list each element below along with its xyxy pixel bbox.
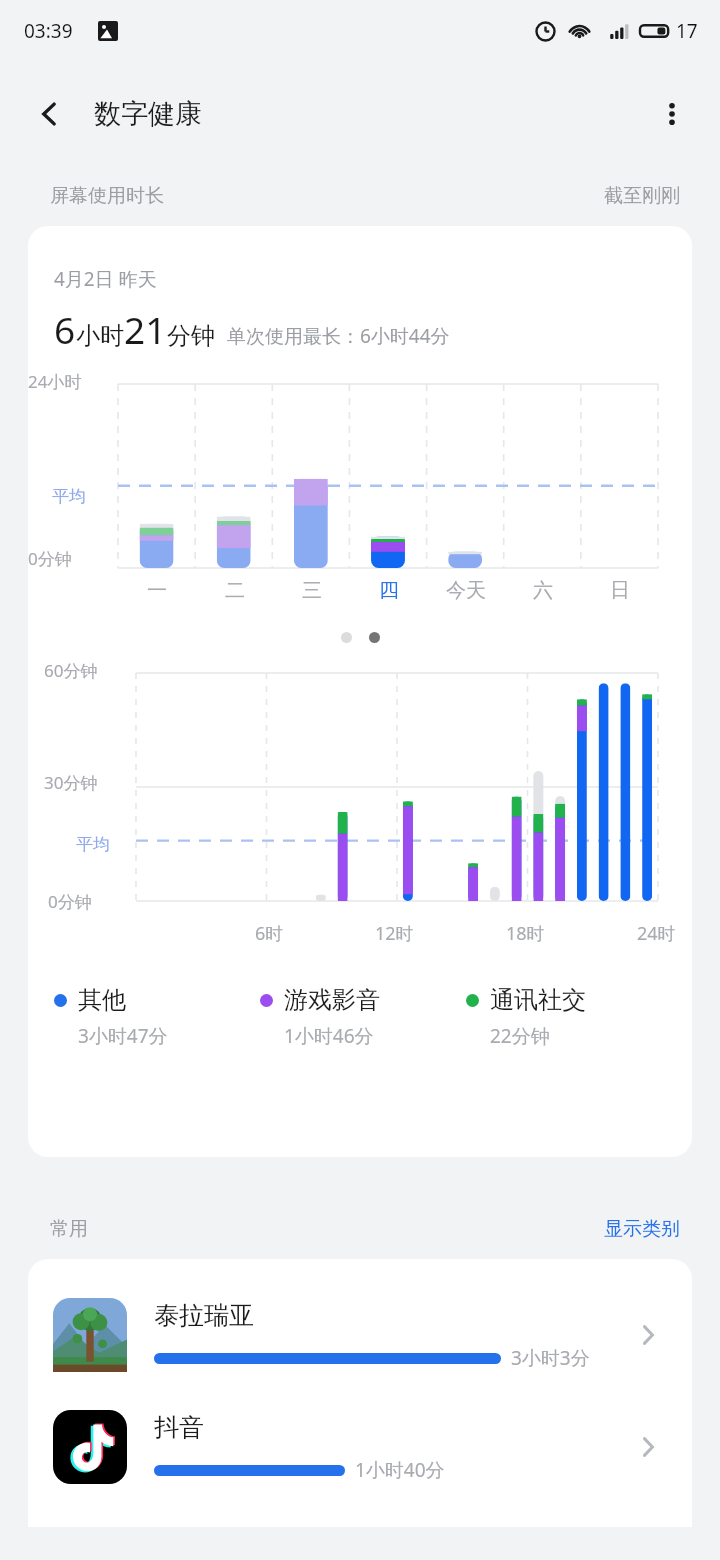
staticText: 22分钟 — [490, 1023, 550, 1049]
staticText: 单次使用最长：6小时44分 — [227, 323, 450, 349]
staticText: 24小时 — [28, 370, 82, 393]
button[interactable]: 游戏影音 — [260, 985, 466, 1049]
other: 查看详情 — [626, 1313, 670, 1357]
staticText: 今天 — [446, 578, 486, 603]
staticText: 平均 — [76, 834, 110, 855]
staticText: 6时 — [255, 921, 284, 946]
staticText: 二 — [225, 578, 245, 603]
staticText: 其他 — [78, 985, 126, 1015]
staticText: 03:39 — [24, 18, 73, 44]
staticText: 三 — [302, 578, 322, 603]
button[interactable]: 更多选项 — [644, 86, 700, 142]
staticText: 平均 — [52, 486, 86, 507]
staticText: 1小时40分 — [355, 1457, 445, 1483]
button[interactable]: 其他 — [54, 985, 260, 1049]
staticText: 日 — [610, 578, 630, 603]
staticText: 小时 — [76, 321, 124, 351]
staticText: 屏幕使用时长 — [50, 184, 164, 208]
staticText: 六 — [533, 578, 553, 603]
staticText: 游戏影音 — [284, 985, 380, 1015]
staticText: 一 — [147, 578, 167, 603]
other: 查看详情 — [626, 1425, 670, 1469]
staticText: 0分钟 — [48, 890, 92, 913]
staticText: 60分钟 — [44, 659, 98, 682]
staticText: 6 — [54, 304, 76, 354]
staticText: 1小时46分 — [284, 1023, 374, 1049]
staticText: 3小时47分 — [78, 1023, 168, 1049]
button[interactable]: 抖音 — [28, 1391, 692, 1503]
staticText: 18时 — [506, 921, 545, 946]
staticText: 抖音 — [154, 1412, 204, 1443]
staticText: 通讯社交 — [490, 985, 586, 1015]
staticText: 0分钟 — [28, 547, 72, 570]
staticText: 4月2日 昨天 — [54, 266, 157, 292]
staticText: 21 — [124, 304, 167, 354]
button[interactable]: 4月2日 昨天 — [28, 226, 692, 1157]
staticText: 24时 — [637, 921, 676, 946]
staticText: 30分钟 — [44, 771, 98, 794]
button[interactable]: 显示类别 — [598, 1213, 686, 1245]
button[interactable]: 截至刚刚 — [598, 180, 686, 212]
staticText: 四 — [379, 578, 399, 603]
staticText: 显示类别 — [604, 1217, 680, 1241]
staticText: 常用 — [50, 1217, 88, 1241]
staticText: 分钟 — [167, 321, 215, 351]
staticText: 截至刚刚 — [604, 184, 680, 208]
button[interactable]: 返回 — [22, 86, 78, 142]
staticText: 数字健康 — [94, 97, 202, 131]
staticText: 泰拉瑞亚 — [154, 1300, 254, 1331]
staticText: 12时 — [375, 921, 414, 946]
staticText: 3小时3分 — [511, 1345, 590, 1371]
staticText: 17 — [676, 18, 698, 44]
button[interactable]: 泰拉瑞亚 — [28, 1279, 692, 1391]
button[interactable]: 通讯社交 — [466, 985, 672, 1049]
